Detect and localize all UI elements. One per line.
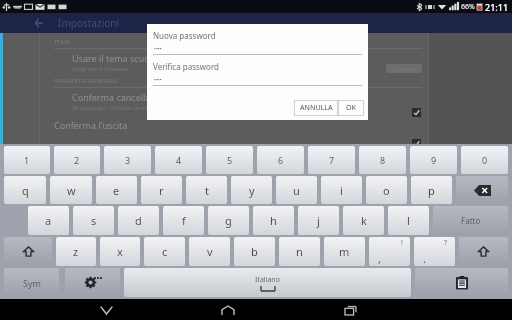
staticText: 9 — [431, 154, 437, 166]
button[interactable]: Space, Italiano — [124, 268, 411, 297]
staticText: w — [67, 183, 76, 198]
button[interactable]: p — [411, 176, 452, 204]
button[interactable]: 4 — [155, 146, 202, 174]
staticText: ANNULLA — [300, 103, 333, 113]
staticText: , — [378, 251, 381, 266]
button[interactable]: Clipboard — [415, 268, 508, 297]
button[interactable]: j — [298, 206, 339, 235]
button[interactable]: n — [279, 237, 320, 266]
button[interactable]: Back — [32, 16, 46, 30]
button[interactable]: i — [321, 176, 362, 204]
staticText: 4 — [176, 154, 182, 166]
button[interactable]: e — [96, 176, 137, 204]
button[interactable]: Symbols — [4, 268, 59, 297]
staticText: x — [117, 244, 123, 259]
button[interactable]: r — [141, 176, 182, 204]
button[interactable]: Hide keyboard — [91, 301, 121, 319]
staticText: 21:11 — [485, 1, 509, 13]
staticText: •••• — [154, 77, 162, 84]
button[interactable] — [412, 108, 421, 117]
staticText: z — [73, 244, 79, 259]
button[interactable]: d — [118, 206, 159, 235]
button[interactable]: f — [163, 206, 204, 235]
button[interactable]: 9 — [410, 146, 457, 174]
staticText: 8 — [380, 154, 386, 166]
staticText: 3 — [125, 154, 131, 166]
button[interactable]: b — [234, 237, 275, 266]
button[interactable]: Recents — [335, 301, 365, 319]
button[interactable]: a — [28, 206, 69, 235]
button[interactable]: OK — [338, 100, 364, 116]
button[interactable]: Home — [213, 301, 243, 319]
button[interactable]: 5 — [206, 146, 253, 174]
button[interactable]: g — [208, 206, 249, 235]
button[interactable]: Shift — [4, 237, 52, 266]
button[interactable]: Backspace — [456, 176, 508, 204]
staticText: b — [251, 244, 258, 259]
button[interactable]: k — [343, 206, 384, 235]
staticText: ! — [401, 238, 403, 248]
button[interactable]: u — [276, 176, 317, 204]
button[interactable]: 2 — [54, 146, 100, 174]
staticText: 6 — [278, 154, 284, 166]
button[interactable]: q — [4, 176, 46, 204]
staticText: ? — [444, 238, 448, 248]
button[interactable]: •••• — [153, 45, 362, 54]
button[interactable]: h — [253, 206, 294, 235]
staticText: TEMA — [54, 38, 71, 46]
button[interactable]: 1 — [4, 146, 50, 174]
staticText: Sym — [23, 277, 41, 289]
staticText: Conferma cancellazione — [72, 91, 174, 103]
button[interactable]: t — [186, 176, 227, 204]
staticText: h — [270, 213, 277, 228]
button[interactable]: s — [73, 206, 114, 235]
button[interactable]: ANNULLA — [294, 100, 338, 116]
staticText: Impostazioni — [58, 16, 120, 30]
staticText: p — [428, 183, 435, 198]
button[interactable]: m — [324, 237, 365, 266]
button[interactable] — [412, 139, 421, 148]
button[interactable]: Input settings — [65, 268, 120, 297]
button[interactable]: ! — [369, 237, 410, 266]
button[interactable]: o — [366, 176, 407, 204]
button[interactable]: ? — [414, 237, 455, 266]
staticText: o — [383, 183, 390, 198]
button[interactable]: Shift — [459, 237, 508, 266]
staticText: 66% — [461, 2, 475, 12]
staticText: q — [22, 183, 29, 198]
staticText: f — [182, 213, 186, 228]
staticText: 7 — [329, 154, 335, 166]
button[interactable]: •••• — [153, 76, 362, 85]
button[interactable]: 7 — [308, 146, 355, 174]
button[interactable]: c — [144, 237, 185, 266]
staticText: s — [91, 213, 97, 228]
button[interactable]: z — [56, 237, 96, 266]
staticText: OK — [346, 103, 356, 113]
staticText: 5 — [227, 154, 233, 166]
button[interactable]: 3 — [104, 146, 151, 174]
staticText: Italiano — [255, 275, 280, 285]
button[interactable]: 8 — [359, 146, 406, 174]
button[interactable]: 6 — [257, 146, 304, 174]
staticText: 0 — [482, 154, 488, 166]
staticText: Se spuntato, richiede conferma — [72, 104, 161, 112]
button[interactable]: v — [189, 237, 230, 266]
button[interactable]: w — [50, 176, 92, 204]
staticText: Usare il tema scuro? — [72, 52, 158, 64]
staticText: c — [162, 244, 168, 259]
staticText: i — [340, 183, 343, 198]
button[interactable]: Usare il tema scuro? — [72, 52, 422, 73]
staticText: m — [339, 244, 350, 259]
button[interactable]: l — [388, 206, 429, 235]
button[interactable]: x — [100, 237, 140, 266]
staticText: a — [45, 213, 52, 228]
staticText: Fatto — [461, 215, 481, 226]
button[interactable]: y — [231, 176, 272, 204]
button[interactable]: Conferma cancellazione — [72, 91, 422, 112]
button[interactable]: 0 — [461, 146, 508, 174]
staticText: e — [113, 183, 120, 198]
staticText: •••• — [154, 46, 162, 53]
button[interactable]: Fatto — [433, 206, 508, 235]
